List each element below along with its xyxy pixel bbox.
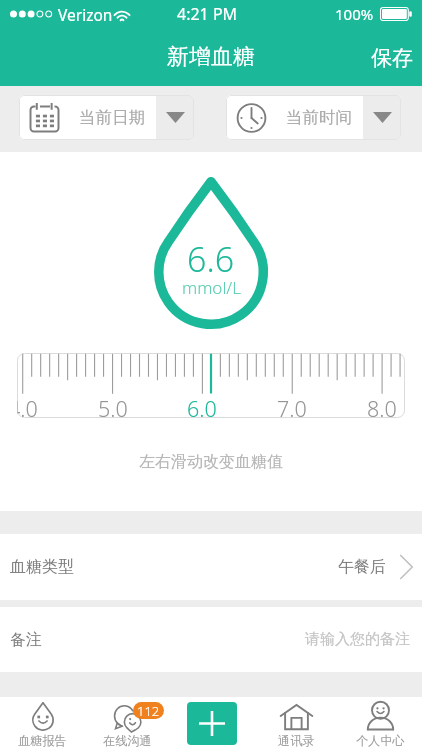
button[interactable]: 当前日期 (19, 95, 194, 140)
button[interactable]: 当前时间 (226, 95, 401, 140)
staticText: 112 (137, 702, 160, 719)
staticText: 通讯录 (278, 733, 315, 748)
staticText: 6.0 (187, 394, 217, 418)
button[interactable]: 通讯录 (254, 697, 338, 750)
staticText: 请输入您的备注 (305, 630, 410, 649)
staticText: 100% (335, 4, 374, 24)
staticText: 7.0 (277, 394, 307, 418)
other: Add record (187, 702, 237, 745)
button[interactable]: 血糖类型 (0, 534, 422, 600)
button[interactable]: 个人中心 (338, 697, 422, 750)
button[interactable]: 保存 (362, 28, 422, 86)
staticText: 4:21 PM (177, 3, 238, 25)
staticText: 当前时间 (286, 107, 352, 128)
staticText: 新增血糖 (167, 43, 255, 71)
staticText: 8.0 (367, 394, 397, 418)
staticText: 血糖类型 (10, 557, 74, 577)
button[interactable]: Add record (170, 697, 254, 750)
staticText: 左右滑动改变血糖值 (139, 452, 283, 472)
staticText: 保存 (371, 45, 413, 71)
staticText: 午餐后 (338, 557, 386, 577)
staticText: 个人中心 (356, 733, 405, 748)
staticText: 4.0 (17, 394, 38, 418)
button[interactable]: 112 (85, 697, 170, 750)
staticText: 备注 (10, 630, 42, 650)
staticText: 5.0 (98, 394, 128, 418)
staticText: mmol/L (182, 276, 241, 299)
button[interactable]: 备注 (0, 607, 422, 672)
staticText: 在线沟通 (103, 733, 152, 748)
staticText: 当前日期 (79, 107, 145, 128)
staticText: 6.6 (187, 236, 235, 282)
staticText: 血糖报告 (18, 733, 67, 748)
staticText: Verizon (58, 4, 113, 25)
button[interactable]: 血糖报告 (0, 697, 85, 750)
